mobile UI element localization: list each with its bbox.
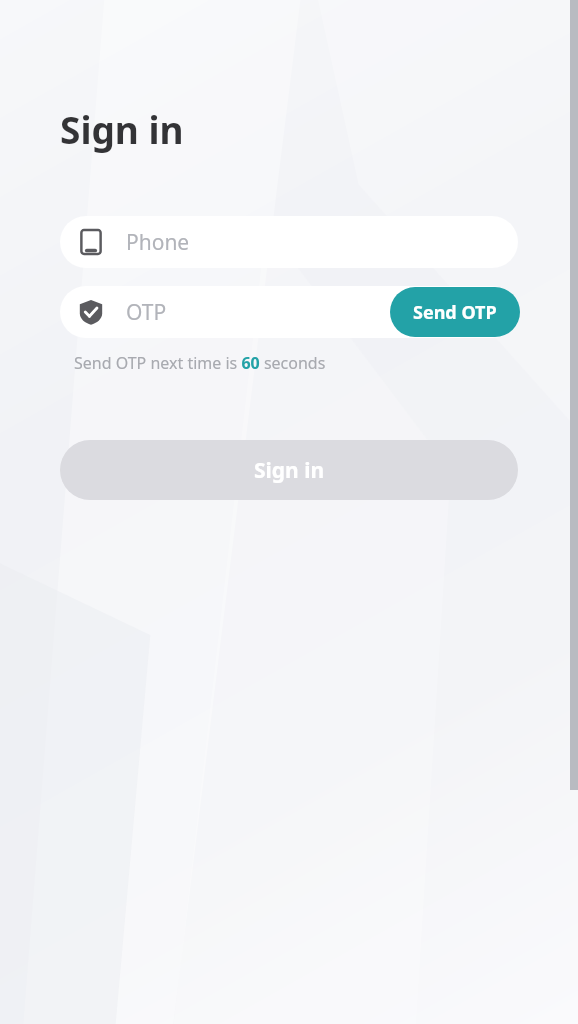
staticText: Send OTP next time is 60 seconds	[74, 352, 326, 374]
staticText: Phone	[126, 228, 190, 257]
button[interactable]: Phone number	[60, 216, 518, 268]
button[interactable]: Send OTP	[390, 287, 520, 337]
other: OTP code	[78, 299, 104, 325]
button[interactable]: Sign in	[60, 440, 518, 500]
staticText: Sign in	[254, 456, 325, 485]
staticText: Sign in	[60, 104, 184, 154]
staticText: Send OTP	[413, 300, 497, 325]
other: Phone number	[78, 229, 104, 255]
button[interactable]: OTP code	[60, 286, 518, 338]
staticText: OTP	[126, 298, 167, 327]
